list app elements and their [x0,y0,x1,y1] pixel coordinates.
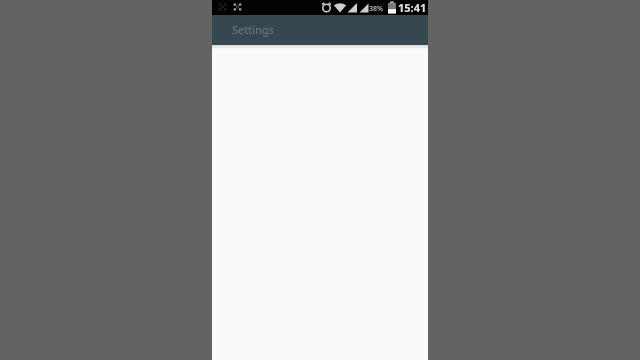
staticText: Settings [232,22,274,37]
button[interactable]: Settings [212,15,428,45]
staticText: 15:41 [398,0,427,15]
staticText: 38% [369,4,383,14]
